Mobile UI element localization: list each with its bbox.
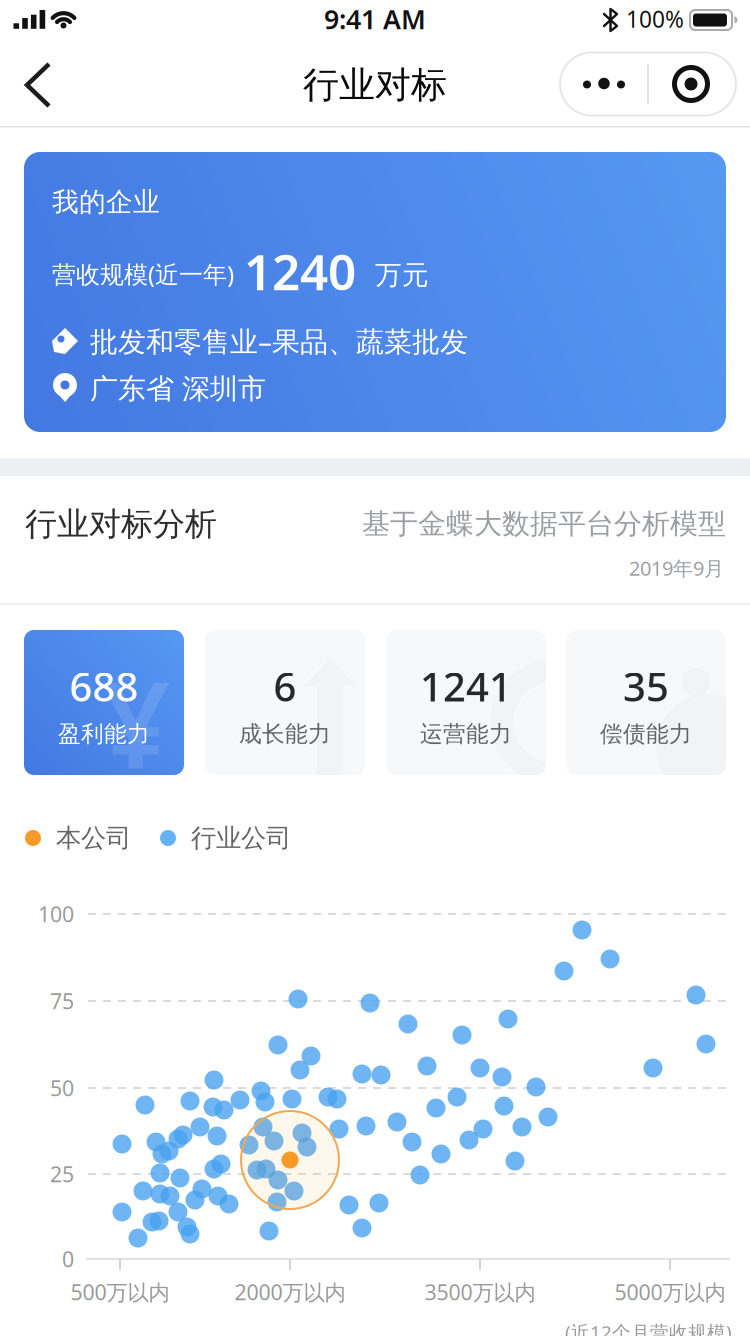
staticText: 偿债能力 [600,720,692,748]
button[interactable]: 35 [566,630,726,775]
button[interactable]: 6 [205,630,365,775]
staticText: 2000万以内 [234,1278,345,1306]
button[interactable]: Close [647,52,735,116]
staticText: 6 [273,659,296,712]
staticText: 营收规模(近一年) [52,258,234,290]
staticText: 35 [623,659,669,712]
button[interactable]: ¥ [24,630,184,775]
staticText: 行业公司 [191,822,291,853]
staticText: 9:41 AM [324,1,426,37]
staticText: 本公司 [56,822,131,853]
staticText: 行业对标 [303,63,447,107]
button[interactable]: 1241 [386,630,546,775]
staticText: 我的企业 [52,186,160,218]
staticText: 5000万以内 [614,1278,725,1306]
staticText: 盈利能力 [58,720,150,748]
staticText: 行业对标分析 [25,504,217,544]
staticText: 广东省 深圳市 [90,372,266,406]
staticText: 万元 [375,259,429,291]
staticText: 1240 [244,238,356,304]
staticText: 成长能力 [239,720,331,748]
staticText: 500万以内 [70,1278,169,1306]
staticText: 1241 [420,659,512,712]
staticText: 50 [50,1074,74,1102]
staticText: 运营能力 [420,720,512,748]
staticText: ¥ [101,642,170,802]
staticText: 688 [69,659,138,712]
staticText: 2019年9月 [629,555,724,581]
staticText: 批发和零售业–果品、蔬菜批发 [90,322,468,360]
staticText: 100 [38,900,74,928]
staticText: 基于金蝶大数据平台分析模型 [362,507,726,541]
staticText: 75 [50,987,74,1015]
staticText: 0 [62,1245,74,1273]
button[interactable]: Back [14,52,70,118]
staticText: 3500万以内 [424,1278,535,1306]
button[interactable]: More [560,52,648,116]
staticText: (近12个月营收规模) [565,1320,732,1336]
staticText: 25 [50,1160,74,1188]
staticText: 100% [626,4,684,34]
